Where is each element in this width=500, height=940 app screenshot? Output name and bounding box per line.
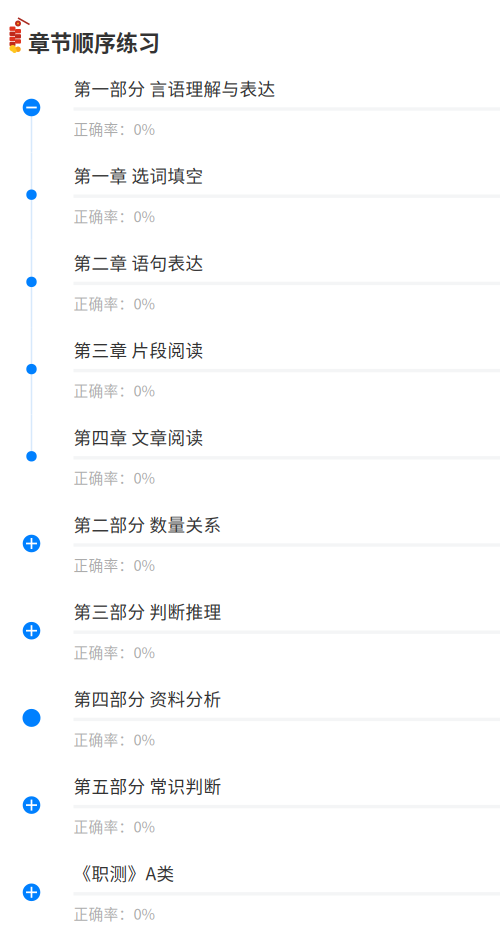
- button[interactable]: 章节顺序练习: [0, 0, 220, 64]
- staticText: 正确率：0%: [73, 903, 155, 924]
- button[interactable]: 第二章 语句表达: [0, 240, 500, 327]
- staticText: 第二章 语句表达: [73, 249, 203, 275]
- staticText: 正确率：0%: [73, 641, 155, 662]
- button[interactable]: 第二部分 数量关系: [0, 501, 500, 589]
- staticText: 第三部分 判断推理: [73, 598, 221, 624]
- staticText: 第一部分 言语理解与表达: [73, 75, 275, 100]
- staticText: 正确率：0%: [73, 467, 155, 488]
- staticText: 第四部分 资料分析: [73, 685, 221, 711]
- staticText: 章节顺序练习: [28, 25, 160, 57]
- button[interactable]: 第三部分 判断推理: [0, 589, 500, 676]
- button[interactable]: 第三章 片段阅读: [0, 327, 500, 414]
- staticText: 正确率：0%: [73, 816, 155, 837]
- staticText: 正确率：0%: [73, 380, 155, 401]
- button[interactable]: 第四部分 资料分析: [0, 676, 500, 763]
- staticText: 《职测》A类: [73, 860, 174, 885]
- staticText: 正确率：0%: [73, 554, 155, 575]
- button[interactable]: 第一章 选词填空: [0, 153, 500, 240]
- staticText: 正确率：0%: [73, 292, 155, 314]
- button[interactable]: 第五部分 常识判断: [0, 763, 500, 850]
- staticText: 正确率：0%: [73, 205, 155, 226]
- staticText: 第四章 文章阅读: [73, 424, 203, 449]
- staticText: 第一章 选词填空: [73, 162, 203, 188]
- button[interactable]: 《职测》A类: [0, 850, 500, 937]
- staticText: 正确率：0%: [73, 728, 155, 750]
- button[interactable]: 第四章 文章阅读: [0, 414, 500, 501]
- staticText: 第二部分 数量关系: [73, 511, 221, 536]
- staticText: 正确率：0%: [73, 118, 155, 139]
- staticText: 第三章 片段阅读: [73, 337, 203, 362]
- button[interactable]: 第一部分 言语理解与表达: [0, 65, 500, 153]
- staticText: 第五部分 常识判断: [73, 773, 221, 798]
